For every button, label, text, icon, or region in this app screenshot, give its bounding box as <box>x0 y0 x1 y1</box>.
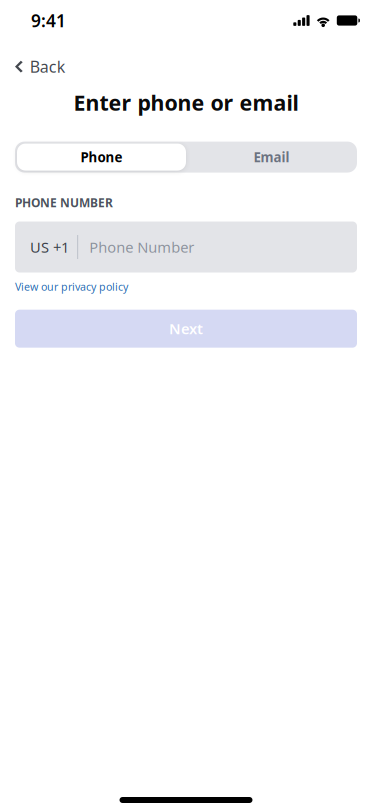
button[interactable]: View our privacy policy <box>0 275 372 298</box>
staticText: Enter phone or email <box>73 88 298 116</box>
button[interactable]: Email <box>186 142 357 173</box>
staticText: US +1 <box>30 237 69 257</box>
staticText: Back <box>30 56 66 77</box>
staticText: Email <box>253 148 289 166</box>
staticText: Phone <box>80 148 122 166</box>
staticText: View our privacy policy <box>15 279 128 294</box>
staticText: Next <box>169 319 203 338</box>
button[interactable]: Next <box>0 310 372 348</box>
button[interactable]: US +1 <box>0 221 372 272</box>
staticText: Phone Number <box>89 237 194 257</box>
staticText: 9:41 <box>31 9 66 32</box>
button[interactable]: Back <box>0 41 78 84</box>
button[interactable]: Phone <box>15 142 186 173</box>
staticText: PHONE NUMBER <box>15 195 113 210</box>
